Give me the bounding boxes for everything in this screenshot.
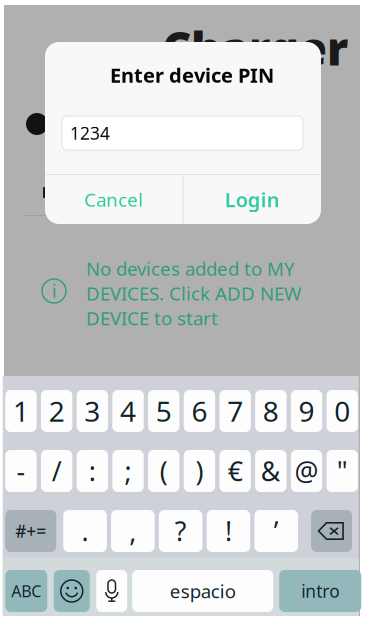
button[interactable]: 5	[148, 390, 179, 432]
staticText: intro	[301, 579, 339, 602]
staticText: -	[16, 453, 25, 489]
staticText: 7	[227, 392, 243, 430]
button[interactable]: @	[291, 450, 322, 492]
staticText: /	[52, 453, 62, 489]
button[interactable]: .	[63, 510, 107, 552]
button[interactable]: 6	[184, 390, 215, 432]
staticText: (	[160, 453, 168, 489]
button[interactable]: 0	[326, 390, 358, 432]
button[interactable]: ,	[111, 510, 155, 552]
button[interactable]: -	[5, 450, 37, 492]
staticText: No devices added to MY DEVICES. Click AD…	[86, 256, 301, 330]
button[interactable]: 3	[77, 390, 108, 432]
staticText: .	[81, 513, 88, 549]
button[interactable]: 9	[291, 390, 322, 432]
button[interactable]: /	[41, 450, 72, 492]
button[interactable]: &	[255, 450, 286, 492]
staticText: !	[225, 513, 232, 549]
staticText: 9	[298, 392, 314, 430]
staticText: 0	[334, 392, 350, 430]
button[interactable]: ;	[112, 450, 144, 492]
staticText: €	[228, 453, 243, 489]
staticText: ?	[175, 513, 187, 549]
button[interactable]: 2	[41, 390, 72, 432]
button[interactable]: ABC	[5, 570, 47, 612]
staticText: 1234	[70, 121, 110, 144]
button[interactable]: Dictation	[96, 570, 127, 612]
button[interactable]: 7	[219, 390, 251, 432]
staticText: "	[337, 453, 348, 489]
staticText: i	[52, 279, 56, 302]
staticText: ’	[274, 513, 279, 549]
staticText: &	[261, 453, 281, 489]
button[interactable]: 1	[5, 390, 37, 432]
staticText: 1	[13, 392, 29, 430]
button[interactable]: "	[326, 450, 358, 492]
staticText: 5	[156, 392, 172, 430]
staticText: 3	[84, 392, 100, 430]
staticText: )	[195, 453, 203, 489]
staticText: @	[294, 453, 318, 489]
button[interactable]: €	[219, 450, 251, 492]
button[interactable]: Login	[183, 175, 321, 224]
staticText: Enter device PIN	[110, 62, 274, 88]
staticText: ;	[124, 453, 131, 489]
staticText: ,	[129, 513, 136, 549]
staticText: Cancel	[84, 187, 143, 212]
button[interactable]: )	[184, 450, 215, 492]
button[interactable]: 8	[255, 390, 286, 432]
button[interactable]: Emoji	[54, 570, 90, 612]
button[interactable]: !	[207, 510, 250, 552]
staticText: :	[89, 453, 96, 489]
button[interactable]: 4	[112, 390, 144, 432]
button[interactable]: :	[77, 450, 108, 492]
staticText: 8	[263, 392, 279, 430]
button[interactable]: Cancel	[45, 175, 182, 224]
button[interactable]: intro	[279, 570, 361, 612]
staticText: Charger	[162, 18, 348, 78]
button[interactable]: ’	[254, 510, 298, 552]
staticText: espacio	[170, 579, 236, 603]
button[interactable]: Delete	[311, 510, 352, 552]
button[interactable]: espacio	[132, 570, 273, 612]
staticText: ABC	[11, 580, 41, 602]
button[interactable]: (	[148, 450, 179, 492]
staticText: 4	[120, 392, 136, 430]
staticText: #+=	[15, 519, 46, 542]
staticText: 6	[191, 392, 207, 430]
staticText: 2	[49, 392, 65, 430]
staticText: Login	[225, 186, 280, 213]
button[interactable]: ?	[159, 510, 202, 552]
button[interactable]: #+=	[5, 510, 56, 552]
